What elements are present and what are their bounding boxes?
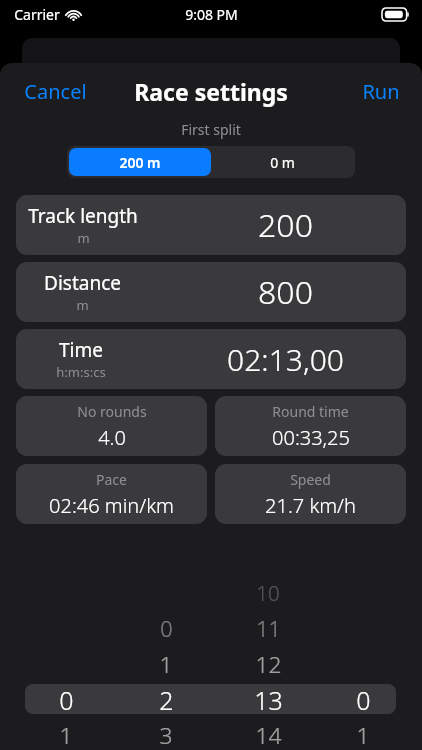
staticText: 11 xyxy=(256,614,281,643)
staticText: 21.7 km/h xyxy=(265,492,356,519)
staticText: No rounds xyxy=(77,402,147,421)
button[interactable]: No rounds xyxy=(16,396,207,456)
staticText: Distance xyxy=(44,270,121,296)
staticText: 200 m xyxy=(119,153,161,172)
button[interactable]: 0 m xyxy=(211,148,353,176)
staticText: Track length xyxy=(28,203,138,229)
staticText: 9:08 PM xyxy=(185,5,238,24)
staticText: Run xyxy=(362,78,400,105)
staticText: Speed xyxy=(290,470,331,489)
staticText: h:m:s:cs xyxy=(56,363,106,381)
staticText: 800 xyxy=(258,270,313,314)
staticText: 1 xyxy=(356,720,370,750)
button[interactable]: 200 m xyxy=(69,148,211,176)
staticText: 2 xyxy=(159,683,174,715)
button[interactable]: Pace xyxy=(16,464,207,524)
staticText: 1 xyxy=(159,649,173,680)
staticText: 10 xyxy=(256,579,280,607)
staticText: 0 m xyxy=(270,153,295,172)
button[interactable]: Time picker xyxy=(0,597,422,750)
staticText: Carrier xyxy=(14,5,60,24)
staticText: 200 xyxy=(258,203,313,247)
button[interactable]: Speed xyxy=(215,464,406,524)
staticText: 12 xyxy=(255,649,282,680)
staticText: 0 xyxy=(160,614,173,643)
staticText: 0 xyxy=(356,683,371,715)
staticText: 4.0 xyxy=(98,424,126,451)
staticText: 0 xyxy=(59,683,74,715)
staticText: Cancel xyxy=(24,78,87,105)
button[interactable]: Run xyxy=(340,69,422,114)
staticText: 1 xyxy=(59,720,73,750)
button[interactable]: Time xyxy=(16,329,406,389)
staticText: m xyxy=(77,229,90,247)
staticText: 14 xyxy=(255,720,282,750)
staticText: Pace xyxy=(96,470,127,489)
staticText: Race settings xyxy=(134,76,288,107)
button[interactable]: Distance xyxy=(16,262,406,322)
staticText: Time xyxy=(59,337,103,363)
staticText: 13 xyxy=(254,683,283,715)
button[interactable]: Round time xyxy=(215,396,406,456)
button[interactable]: Cancel xyxy=(0,69,111,114)
staticText: 02:13,00 xyxy=(227,339,344,380)
staticText: Round time xyxy=(272,402,349,421)
staticText: m xyxy=(76,296,89,314)
button[interactable]: Track length xyxy=(16,195,406,255)
staticText: 02:46 min/km xyxy=(49,492,174,519)
staticText: 3 xyxy=(159,720,173,750)
staticText: 00:33,25 xyxy=(272,424,350,451)
staticText: First split xyxy=(181,120,241,139)
